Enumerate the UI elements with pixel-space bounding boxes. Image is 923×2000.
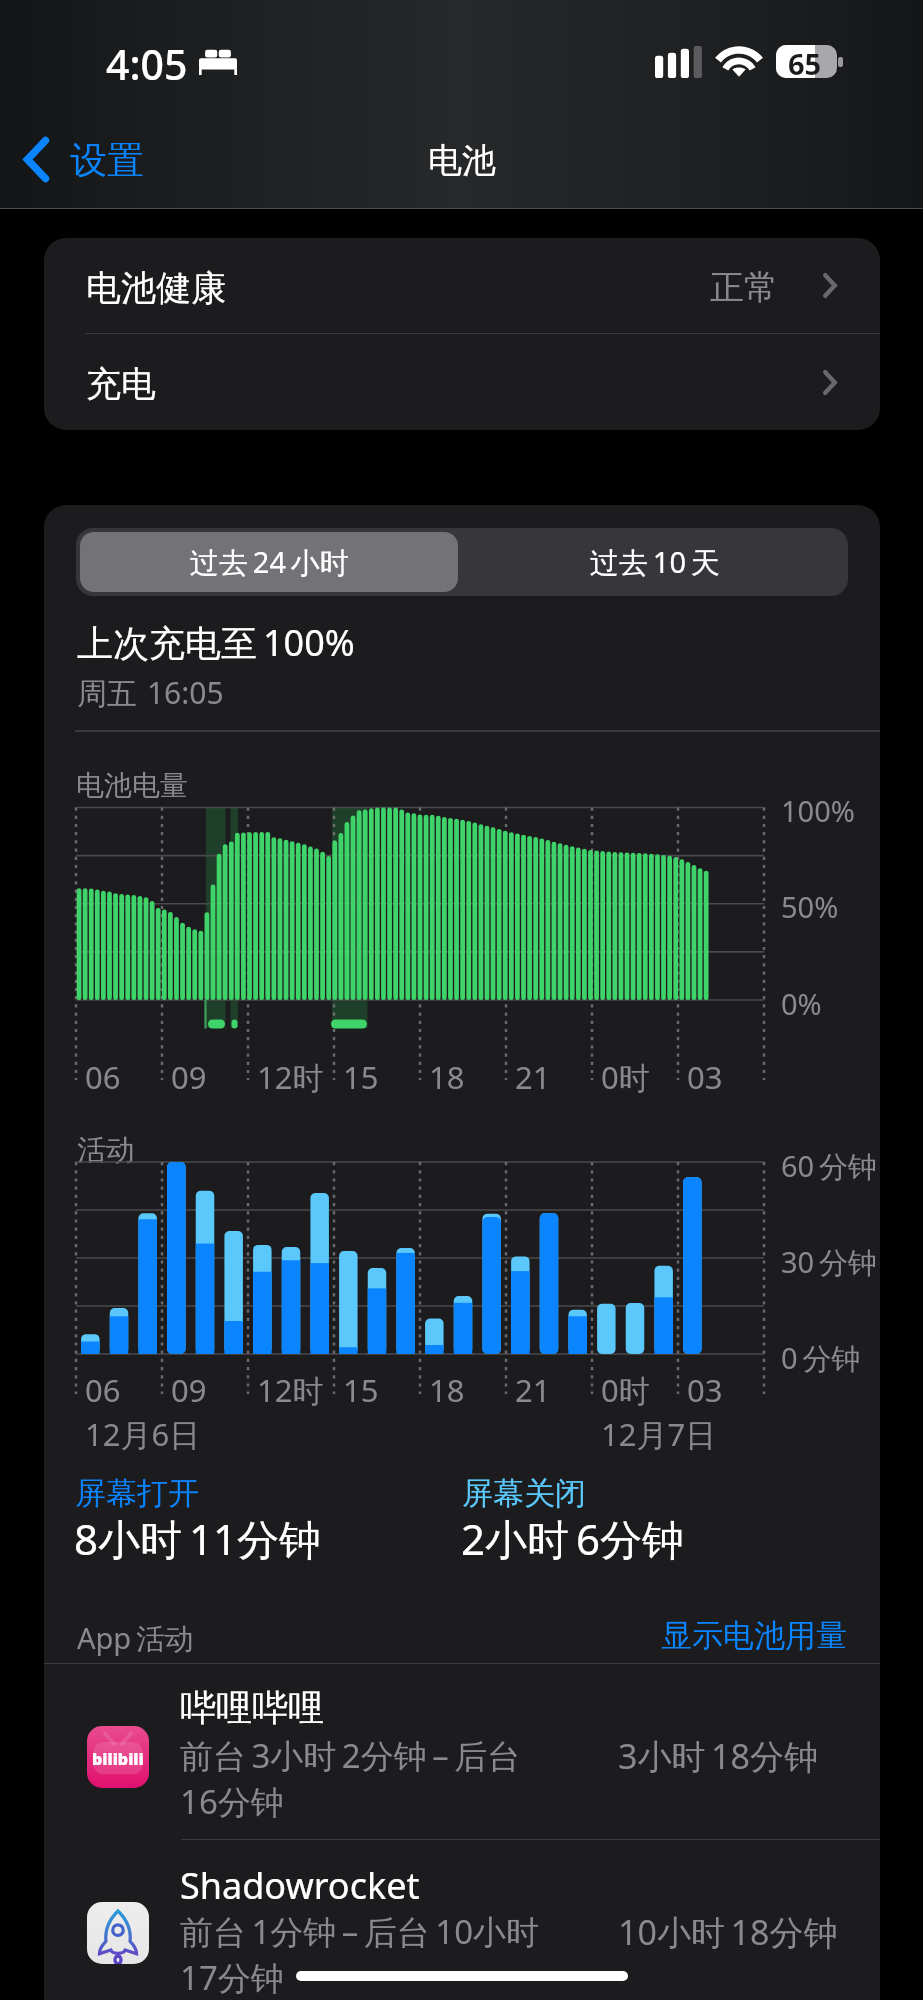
staticText: 哔哩哔哩 [180,1685,324,1730]
staticText: 电池电量 [76,768,188,803]
staticText: 电池 [428,139,496,182]
staticText: 0% [781,984,822,1023]
staticText: App 活动 [77,1618,195,1658]
staticText: 18 [429,1056,465,1098]
staticText: 屏幕关闭 [462,1474,586,1513]
staticText: 2小时 6分钟 [461,1510,685,1567]
staticText: 0 分钟 [781,1338,861,1378]
staticText: 过去 24 小时 [190,542,349,582]
staticText: 09 [171,1369,207,1411]
staticText: 显示电池用量 [661,1616,847,1655]
staticText: 06 [85,1369,121,1411]
staticText: 21 [515,1369,551,1411]
staticText: 设置 [70,137,144,184]
button[interactable]: 过去 10 天 [462,528,848,596]
button[interactable]: 显示电池用量 [644,1613,847,1657]
staticText: 12时 [257,1056,324,1098]
staticText: 12月7日 [601,1413,717,1455]
staticText: 50% [781,887,839,926]
staticText: 12月6日 [85,1413,201,1455]
staticText: 前台 3小时 2分钟 – 后台 [180,1733,521,1778]
staticText: 18 [429,1369,465,1411]
button[interactable]: 充电 [44,334,880,430]
staticText: 活动 [77,1132,135,1169]
button[interactable]: bilibili [44,1664,880,1840]
staticText: 上次充电至 100% [77,618,355,667]
staticText: 电池健康 [86,266,226,310]
staticText: 3小时 18分钟 [618,1733,818,1779]
staticText: 65 [788,45,822,77]
staticText: 60 分钟 [781,1146,877,1186]
staticText: 15 [343,1056,379,1098]
staticText: 8小时 11分钟 [74,1510,322,1567]
button[interactable]: 电池健康 [44,238,880,333]
staticText: 09 [171,1056,207,1098]
staticText: 周五 16:05 [77,672,224,713]
button[interactable]: 设置 [0,130,170,189]
staticText: bilibili [92,1748,144,1770]
button[interactable]: Shadowrocket [44,1840,880,2000]
staticText: 100% [781,791,855,830]
staticText: 21 [515,1056,551,1098]
staticText: Shadowrocket [180,1861,420,1910]
button[interactable]: 过去 24 小时 [80,532,458,592]
staticText: 正常 [710,266,778,309]
staticText: 前台 1分钟 – 后台 10小时 [180,1909,540,1954]
staticText: 06 [85,1056,121,1098]
staticText: 10小时 18分钟 [618,1909,838,1955]
staticText: 30 分钟 [781,1242,877,1282]
staticText: 03 [687,1056,723,1098]
staticText: 过去 10 天 [590,542,720,582]
staticText: 17分钟 [180,1955,284,2000]
staticText: 15 [343,1369,379,1411]
staticText: 充电 [86,362,156,406]
staticText: 4:05 [106,36,188,92]
staticText: 12时 [257,1369,324,1411]
staticText: 0时 [601,1369,650,1411]
staticText: 16分钟 [180,1779,284,1824]
staticText: 屏幕打开 [75,1474,199,1513]
staticText: 03 [687,1369,723,1411]
staticText: 0时 [601,1056,650,1098]
